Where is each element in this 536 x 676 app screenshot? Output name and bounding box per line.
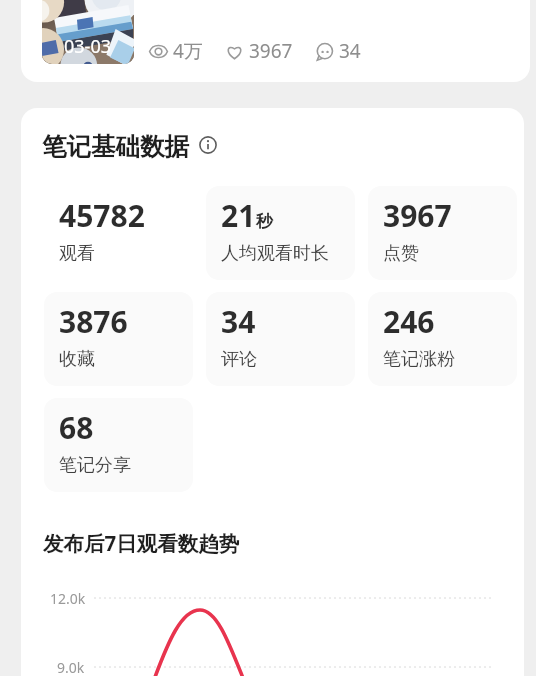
staticText: 笔记涨粉 <box>383 348 455 371</box>
staticText: 246 <box>383 301 435 342</box>
staticText: 34 <box>221 301 256 342</box>
staticText: 3967 <box>249 38 293 64</box>
button[interactable]: 3967 <box>368 186 517 280</box>
button[interactable]: 45782 <box>44 186 193 280</box>
button[interactable]: 68 <box>44 398 193 492</box>
staticText: 03-03 <box>64 34 111 59</box>
staticText: 34 <box>339 38 361 64</box>
staticText: 4万 <box>173 38 203 64</box>
staticText: 评论 <box>221 348 257 371</box>
staticText: 收藏 <box>59 348 95 371</box>
staticText: 45782 <box>59 195 145 236</box>
staticText: 笔记基础数据 <box>42 131 189 162</box>
staticText: 点赞 <box>383 242 419 265</box>
button[interactable]: 3876 <box>44 292 193 386</box>
staticText: 9.0k <box>57 658 85 676</box>
staticText: 秒 <box>256 211 273 232</box>
button[interactable]: 21 <box>206 186 355 280</box>
staticText: 人均观看时长 <box>221 242 329 265</box>
staticText: 发布后7日观看数趋势 <box>43 529 240 557</box>
button[interactable]: 246 <box>368 292 517 386</box>
staticText: 12.0k <box>50 589 86 608</box>
staticText: 3967 <box>383 195 452 236</box>
staticText: 笔记分享 <box>59 454 131 477</box>
staticText: 3876 <box>59 301 128 342</box>
staticText: 观看 <box>59 242 95 265</box>
staticText: 68 <box>59 407 94 448</box>
staticText: 21 <box>221 195 256 236</box>
button[interactable]: 03-03 <box>21 0 530 82</box>
button[interactable]: 34 <box>206 292 355 386</box>
button[interactable]: More info <box>199 136 217 154</box>
